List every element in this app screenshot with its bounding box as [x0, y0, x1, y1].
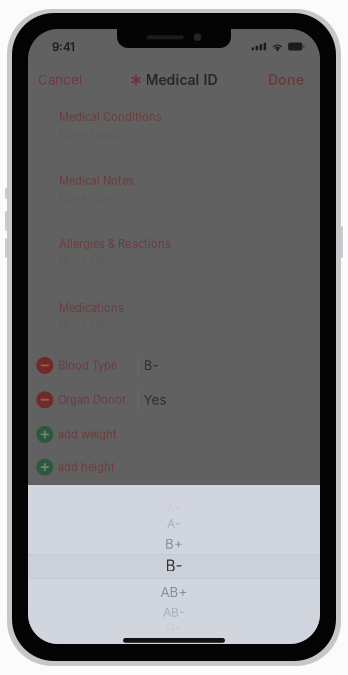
staticText: AB- [163, 605, 185, 619]
staticText: Allergies & Reactions [59, 237, 171, 251]
staticText: add height [58, 460, 115, 474]
button[interactable]: Allergies & Reactions [28, 238, 320, 284]
staticText: A- [167, 517, 181, 531]
staticText: Blood Type [58, 359, 117, 372]
button[interactable]: Medical Conditions [28, 111, 320, 157]
button[interactable]: Done [256, 68, 304, 92]
button[interactable]: Medications [28, 302, 320, 348]
staticText: Yes [143, 392, 166, 408]
staticText: Medications [59, 301, 124, 315]
button[interactable]: Cancel [38, 68, 94, 92]
staticText: B+ [165, 536, 183, 552]
staticText: B- [143, 357, 158, 373]
staticText: AB+ [160, 584, 187, 600]
staticText: Organ Donor [58, 393, 126, 406]
button[interactable]: add height [28, 450, 320, 484]
button[interactable]: add weight [28, 417, 320, 451]
staticText: A+ [167, 502, 181, 514]
staticText: Cancel [38, 72, 82, 88]
staticText: Medical Notes [59, 174, 134, 187]
button[interactable]: Blood Type [28, 348, 320, 382]
staticText: 9:41 [52, 40, 75, 54]
staticText: Medical ID [145, 71, 217, 88]
staticText: B- [165, 557, 182, 575]
staticText: Done [268, 71, 304, 88]
staticText: add weight [58, 428, 117, 441]
staticText: Medical Conditions [59, 110, 162, 124]
button[interactable]: Medical Notes [28, 175, 320, 221]
button[interactable]: Organ Donor [28, 383, 320, 417]
